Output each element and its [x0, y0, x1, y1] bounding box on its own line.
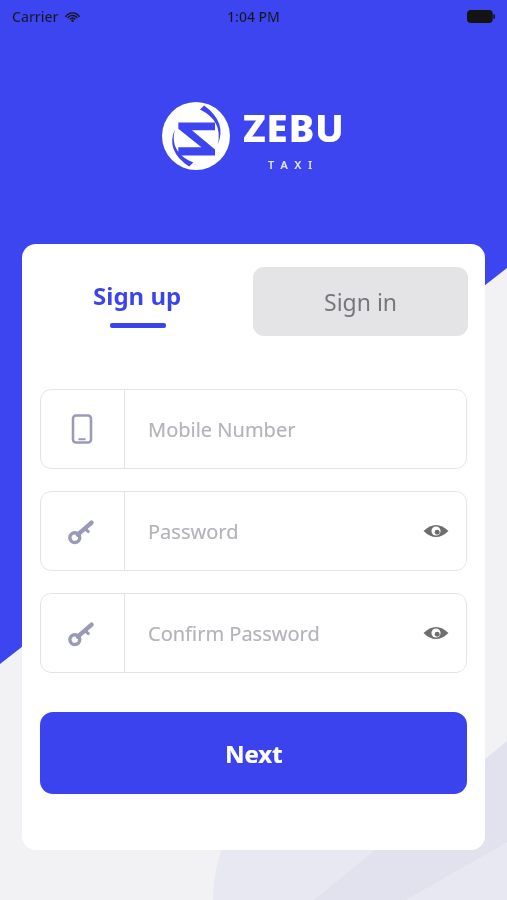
- button[interactable]: Mobile Number: [40, 389, 467, 469]
- staticText: Sign in: [324, 286, 398, 317]
- staticText: Password: [148, 518, 239, 545]
- staticText: Carrier: [12, 7, 59, 26]
- staticText: TAXI: [268, 157, 320, 172]
- staticText: Sign up: [93, 279, 182, 312]
- staticText: ZEBU: [243, 101, 345, 153]
- staticText: Mobile Number: [148, 416, 296, 443]
- button[interactable]: Show password: [405, 491, 467, 571]
- staticText: Next: [225, 737, 283, 770]
- button[interactable]: Confirm Password: [40, 593, 467, 673]
- button[interactable]: Password: [40, 491, 467, 571]
- button[interactable]: Show password: [405, 593, 467, 673]
- button[interactable]: Sign up: [22, 267, 253, 328]
- button[interactable]: Sign in: [253, 267, 468, 336]
- staticText: 1:04 PM: [227, 7, 280, 26]
- button[interactable]: Next: [40, 712, 467, 794]
- staticText: Confirm Password: [148, 620, 320, 647]
